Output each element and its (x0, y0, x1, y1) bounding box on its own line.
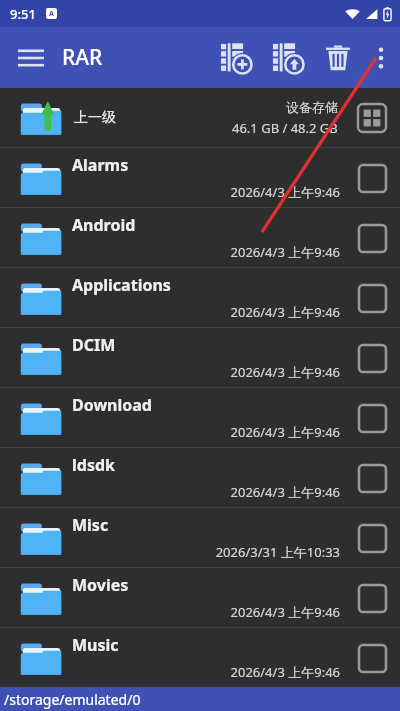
staticText: 2026/4/3 上午9:46 (72, 483, 340, 501)
button[interactable]: ldsdk (0, 448, 400, 507)
staticText: Misc (72, 514, 109, 536)
staticText: 2026/3/31 上午10:33 (72, 543, 340, 561)
button[interactable]: Select Music (350, 636, 394, 680)
staticText: 2026/4/3 上午9:46 (72, 663, 340, 681)
staticText: Applications (72, 274, 171, 296)
staticText: 2026/4/3 上午9:46 (72, 243, 340, 261)
staticText: Download (72, 394, 152, 416)
button[interactable]: Select Movies (350, 576, 394, 620)
button[interactable]: Movies (0, 568, 400, 627)
staticText: Music (72, 634, 119, 656)
staticText: /storage/emulated/0 (4, 690, 141, 709)
staticText: 2026/4/3 上午9:46 (72, 363, 340, 381)
button[interactable]: Select Android (350, 216, 394, 260)
button[interactable]: /storage/emulated/0 (0, 687, 400, 711)
button[interactable]: Applications (0, 268, 400, 327)
staticText: ldsdk (72, 454, 115, 476)
button[interactable]: Misc (0, 508, 400, 567)
staticText: Alarms (72, 154, 129, 176)
button[interactable]: Delete (314, 27, 362, 88)
staticText: 9:51 (10, 5, 36, 23)
button[interactable]: DCIM (0, 328, 400, 387)
button[interactable]: Menu (0, 27, 62, 88)
button[interactable]: Music (0, 628, 400, 687)
staticText: 2026/4/3 上午9:46 (72, 423, 340, 441)
button[interactable]: RAR (62, 43, 103, 72)
button[interactable]: More options (362, 27, 400, 88)
staticText: A (49, 9, 54, 19)
staticText: Movies (72, 574, 129, 596)
staticText: 设备存储 (286, 99, 338, 115)
button[interactable]: Select Alarms (350, 156, 394, 200)
button[interactable]: Extract archive (262, 27, 314, 88)
button[interactable]: Switch to grid view (350, 96, 394, 140)
staticText: 2026/4/3 上午9:46 (72, 183, 340, 201)
staticText: Android (72, 214, 136, 236)
staticText: DCIM (72, 334, 116, 356)
staticText: 46.1 GB / 48.2 GB (232, 119, 338, 137)
button[interactable]: Select DCIM (350, 336, 394, 380)
button[interactable]: 上一级 (0, 88, 400, 147)
staticText: 上一级 (74, 109, 116, 127)
button[interactable]: Android (0, 208, 400, 267)
button[interactable]: Select Download (350, 396, 394, 440)
button[interactable]: Download (0, 388, 400, 447)
button[interactable]: Add to archive (210, 27, 262, 88)
button[interactable]: Select Applications (350, 276, 394, 320)
button[interactable]: Alarms (0, 148, 400, 207)
staticText: 2026/4/3 上午9:46 (72, 303, 340, 321)
button[interactable]: Select Misc (350, 516, 394, 560)
staticText: 2026/4/3 上午9:46 (72, 603, 340, 621)
button[interactable]: Select ldsdk (350, 456, 394, 500)
